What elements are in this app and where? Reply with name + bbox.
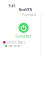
button[interactable]: Disconnect VPN (19, 23, 29, 33)
button[interactable]: NordVPN (19, 8, 32, 12)
staticText: NordVPN (19, 8, 32, 12)
staticText: United States (7, 41, 25, 44)
staticText: Protected (22, 13, 36, 17)
staticText: 9:41 (9, 4, 16, 8)
staticText: Fast server (8, 44, 21, 48)
staticText: Connected (15, 35, 31, 38)
